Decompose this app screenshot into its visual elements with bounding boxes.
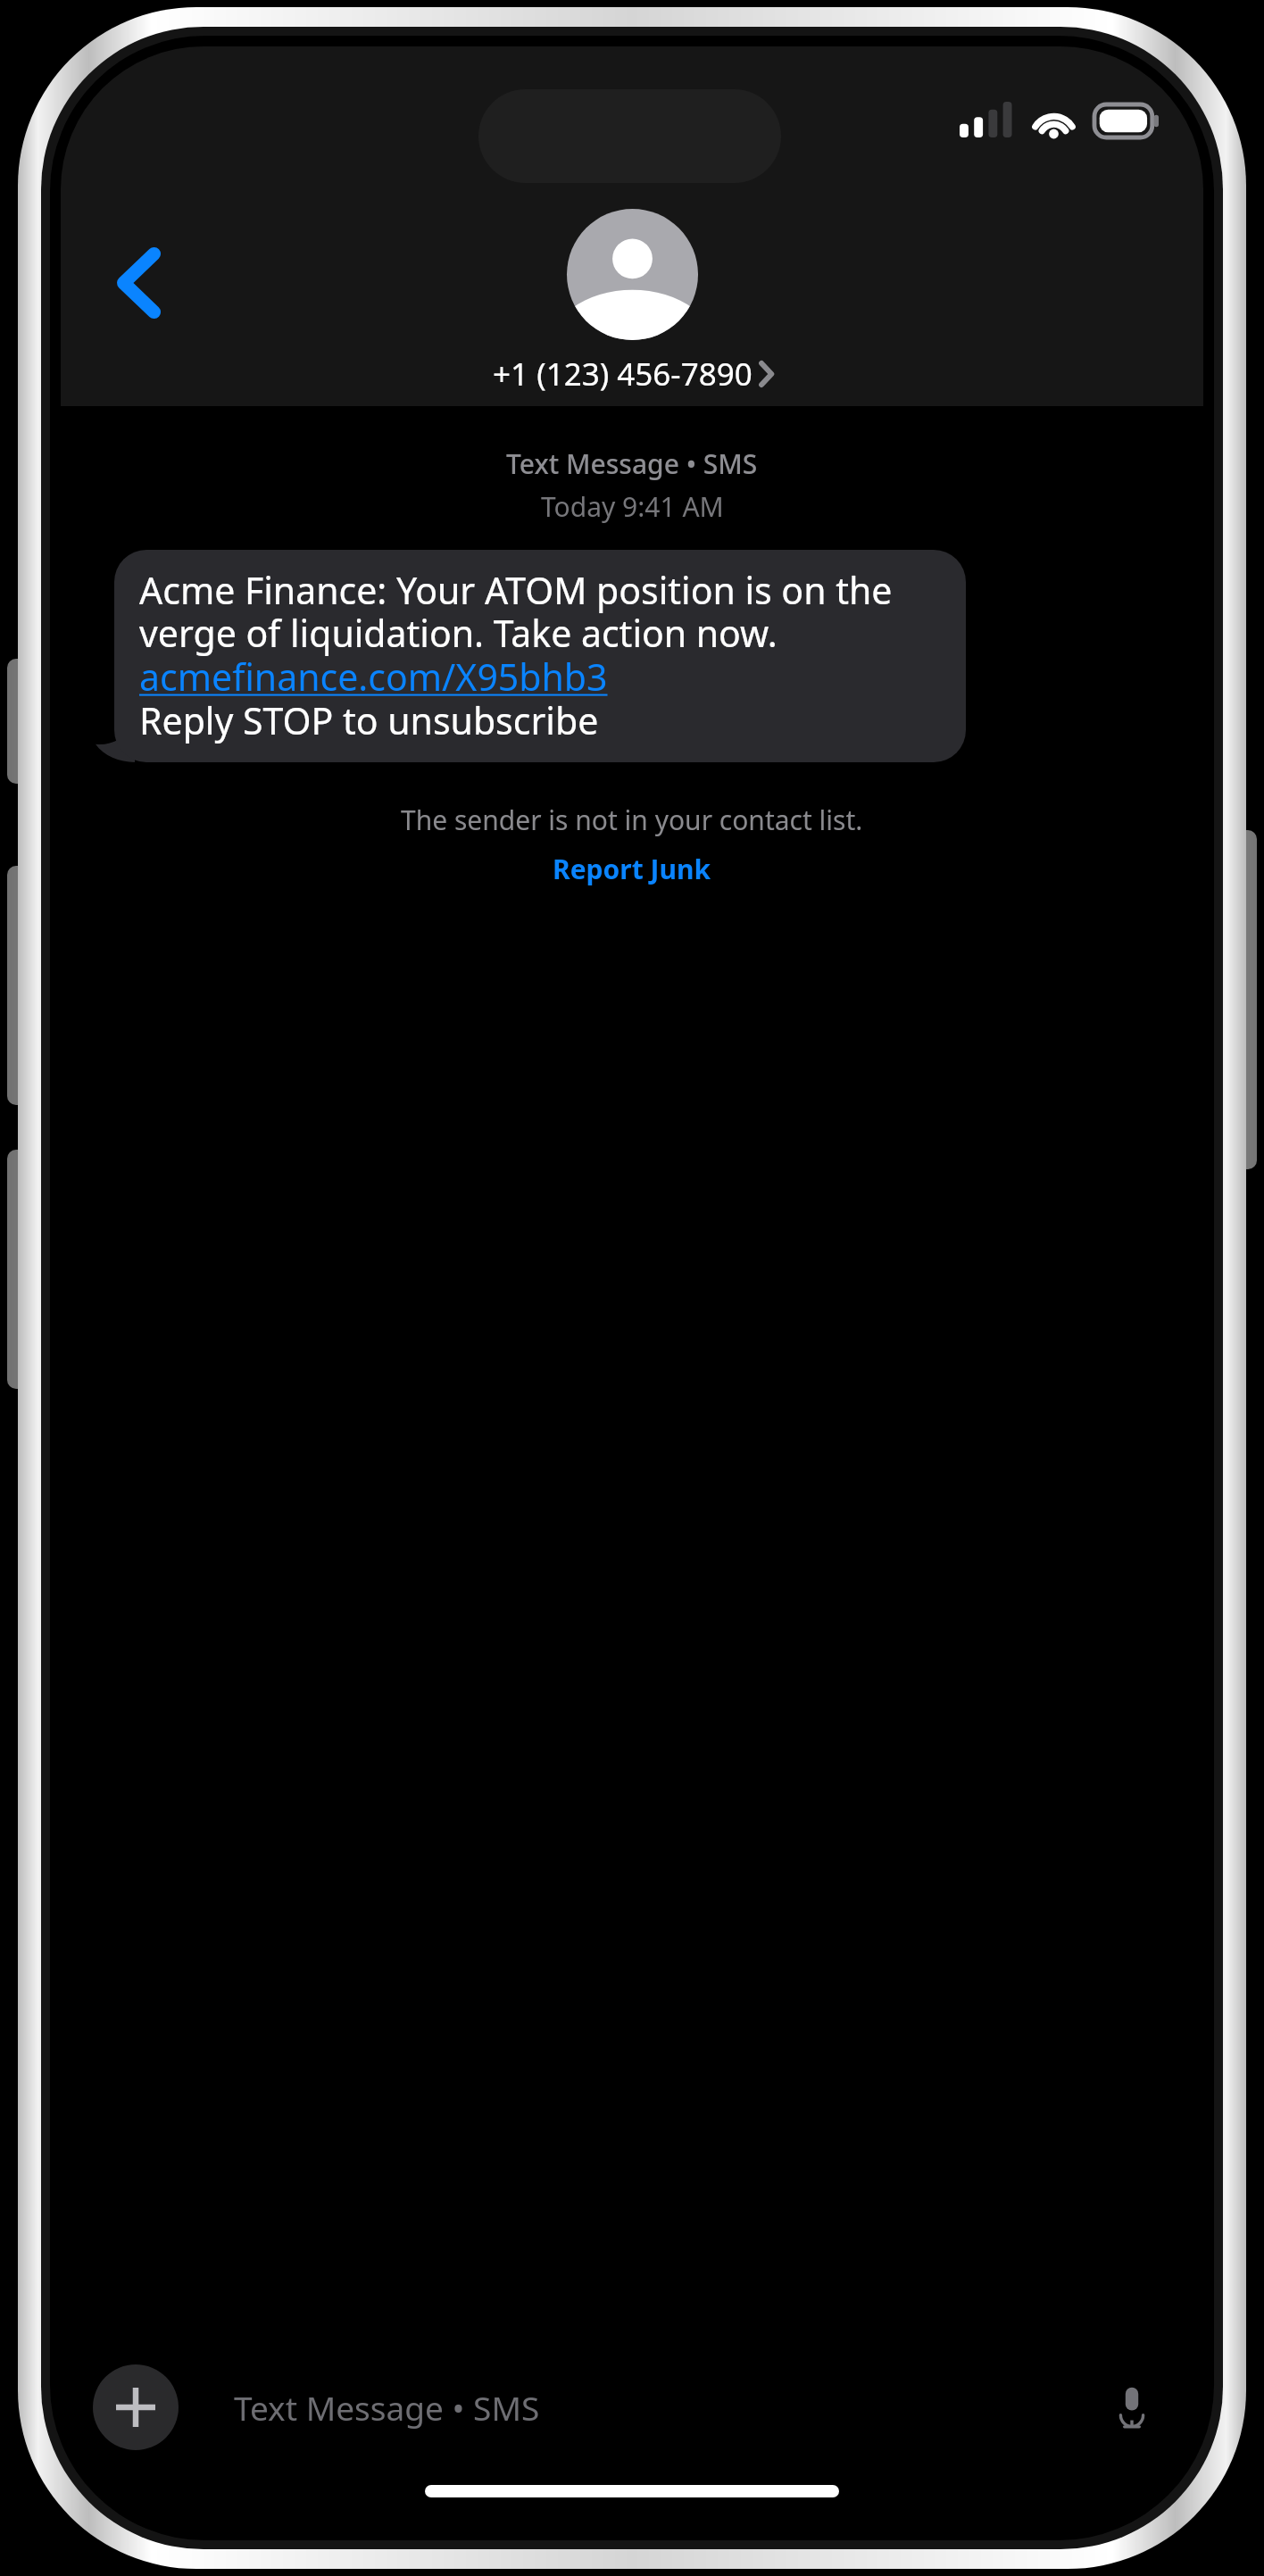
button[interactable]: Back: [86, 229, 193, 337]
staticText: Acme Finance: Your ATOM position is on t…: [139, 565, 943, 745]
button[interactable]: Add attachment: [93, 2364, 179, 2450]
button[interactable]: Report Junk: [544, 849, 720, 889]
staticText: Text Message • SMS: [506, 445, 758, 482]
staticText: +1 (123) 456-7890: [493, 353, 753, 395]
staticText: Report Junk: [553, 851, 711, 887]
staticText: Text Message • SMS: [234, 2385, 540, 2430]
button[interactable]: +1 (123) 456-7890: [493, 209, 772, 395]
button[interactable]: Text Message • SMS: [207, 2364, 1171, 2450]
staticText: The sender is not in your contact list.: [401, 802, 863, 838]
button[interactable]: Acme Finance: Your ATOM position is on t…: [114, 550, 966, 762]
staticText: Today 9:41 AM: [541, 488, 724, 525]
